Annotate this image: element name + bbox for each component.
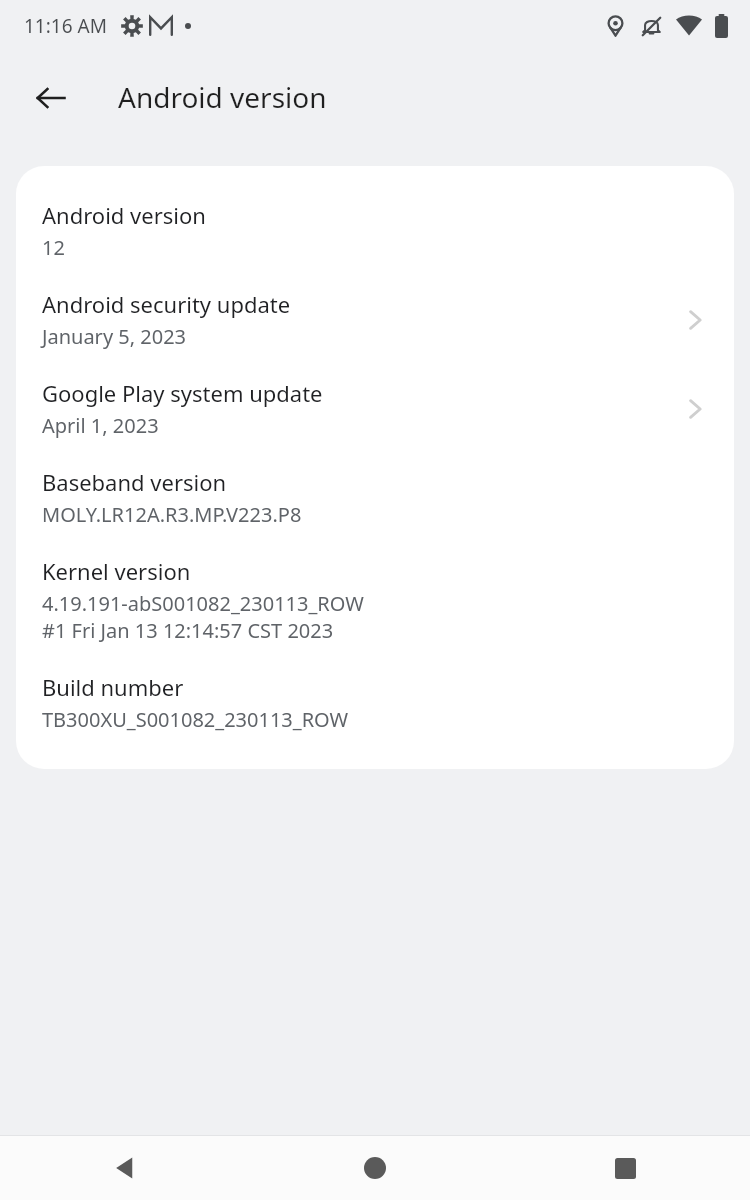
button[interactable]: Kernel version: [16, 542, 734, 658]
button[interactable]: Baseband version: [16, 453, 734, 542]
staticText: Kernel version: [42, 556, 191, 586]
staticText: Android version: [42, 200, 206, 230]
button[interactable]: Google Play system update: [16, 364, 734, 453]
staticText: 11:16 AM: [24, 13, 107, 39]
button[interactable]: Home: [250, 1136, 500, 1200]
staticText: April 1, 2023: [42, 412, 159, 439]
button[interactable]: Back: [0, 1136, 250, 1200]
staticText: Build number: [42, 672, 184, 702]
staticText: TB300XU_S001082_230113_ROW: [42, 706, 349, 733]
button[interactable]: Back: [22, 69, 80, 127]
staticText: Android security update: [42, 289, 291, 319]
staticText: 4.19.191-abS001082_230113_ROW #1 Fri Jan…: [42, 590, 364, 644]
staticText: Google Play system update: [42, 378, 323, 408]
staticText: 12: [42, 234, 65, 261]
staticText: January 5, 2023: [42, 323, 187, 350]
button[interactable]: Recent apps: [500, 1136, 750, 1200]
staticText: MOLY.LR12A.R3.MP.V223.P8: [42, 501, 302, 528]
button[interactable]: Build number: [16, 658, 734, 747]
button[interactable]: Android version: [16, 186, 734, 275]
staticText: Baseband version: [42, 467, 227, 497]
staticText: Android version: [118, 78, 327, 116]
button[interactable]: Android security update: [16, 275, 734, 364]
